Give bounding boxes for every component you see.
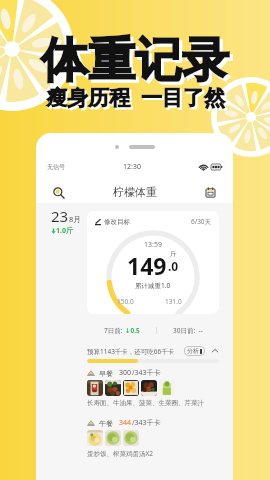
staticText: 柠檬体重 <box>113 185 157 199</box>
staticText: 瘦身历程 一目了然 <box>48 85 227 114</box>
staticText: 7日前: <box>104 326 125 335</box>
button[interactable]: 分析 <box>184 346 205 356</box>
staticText: 斤 <box>170 250 177 258</box>
button[interactable]: 预算1143千卡，还可吃66千卡 <box>87 346 219 363</box>
staticText: 150.0 <box>117 297 134 306</box>
staticText: 体重记录 <box>44 34 232 93</box>
staticText: 无信号 <box>47 163 65 171</box>
staticText: 149 <box>127 250 167 281</box>
staticText: 蛋炒饭、榨菜鸡蛋汤X2 <box>87 449 154 458</box>
staticText: 修改目标 <box>104 218 130 226</box>
staticText: 131.0 <box>165 297 182 306</box>
staticText: 体重记录 <box>41 31 229 90</box>
staticText: 13:59 <box>144 240 162 250</box>
staticText: /343千卡 <box>132 368 161 378</box>
staticText: 300 <box>119 368 132 378</box>
staticText: 预算1143千卡，还可吃66千卡 <box>87 347 175 356</box>
button[interactable]: Search <box>51 185 66 200</box>
staticText: 午餐 <box>99 419 113 428</box>
button[interactable]: Collapse <box>211 347 219 355</box>
button[interactable]: 午餐 <box>87 418 219 458</box>
staticText: 30日前: -- <box>173 326 203 335</box>
staticText: 23 <box>51 206 69 226</box>
button[interactable]: Calendar <box>203 185 218 200</box>
button[interactable]: 早餐 <box>87 368 219 407</box>
staticText: 早餐 <box>99 369 113 378</box>
staticText: ↓0.5 <box>125 326 140 335</box>
staticText: 12:30 <box>123 162 141 172</box>
staticText: 8月 <box>69 214 81 224</box>
staticText: /343千卡 <box>132 418 161 428</box>
staticText: 累计减重1.0 <box>135 281 171 290</box>
button[interactable]: 修改目标 <box>87 211 219 314</box>
staticText: 分析 <box>187 347 199 355</box>
staticText: .0 <box>168 258 179 274</box>
staticText: 1.0斤 <box>56 226 73 236</box>
staticText: 瘦身历程 一目了然 <box>46 83 225 112</box>
staticText: 长寿面、牛油果、菠菜、生菜圈、芹菜汁 <box>87 399 204 407</box>
staticText: 344 <box>119 418 132 428</box>
staticText: 6/30天 <box>191 217 212 226</box>
